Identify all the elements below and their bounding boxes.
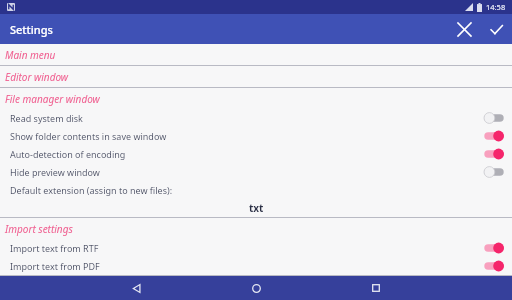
staticText: 14:58 <box>486 2 506 12</box>
button[interactable]: Back <box>121 276 151 300</box>
staticText: Show folder contents in save window <box>10 130 167 142</box>
button[interactable]: Save <box>480 14 512 44</box>
staticText: Auto-detection of encoding <box>10 148 126 160</box>
staticText: Read system disk <box>10 112 83 124</box>
button[interactable]: Import text from PDF <box>0 257 512 275</box>
button[interactable]: Home <box>241 276 271 300</box>
button[interactable]: Default extension (assign to new files): <box>0 181 512 199</box>
button[interactable]: Discard <box>448 14 480 44</box>
staticText: Import text from RTF <box>10 242 99 254</box>
staticText: Hide preview window <box>10 166 100 178</box>
staticText: File manager window <box>5 92 100 106</box>
button[interactable]: txt <box>0 199 512 217</box>
staticText: Settings <box>10 22 53 37</box>
button[interactable]: Hide preview window <box>0 163 512 181</box>
button[interactable]: Auto-detection of encoding <box>0 145 512 163</box>
button[interactable]: Import text from RTF <box>0 239 512 257</box>
button[interactable]: Show folder contents in save window <box>0 127 512 145</box>
staticText: Main menu <box>5 48 56 62</box>
staticText: Import settings <box>5 222 73 236</box>
staticText: Import text from PDF <box>10 260 100 272</box>
staticText: txt <box>249 201 264 215</box>
staticText: Editor window <box>5 70 69 84</box>
button[interactable]: Read system disk <box>0 109 512 127</box>
button[interactable]: Recent apps <box>361 276 391 300</box>
staticText: Default extension (assign to new files): <box>10 184 173 196</box>
